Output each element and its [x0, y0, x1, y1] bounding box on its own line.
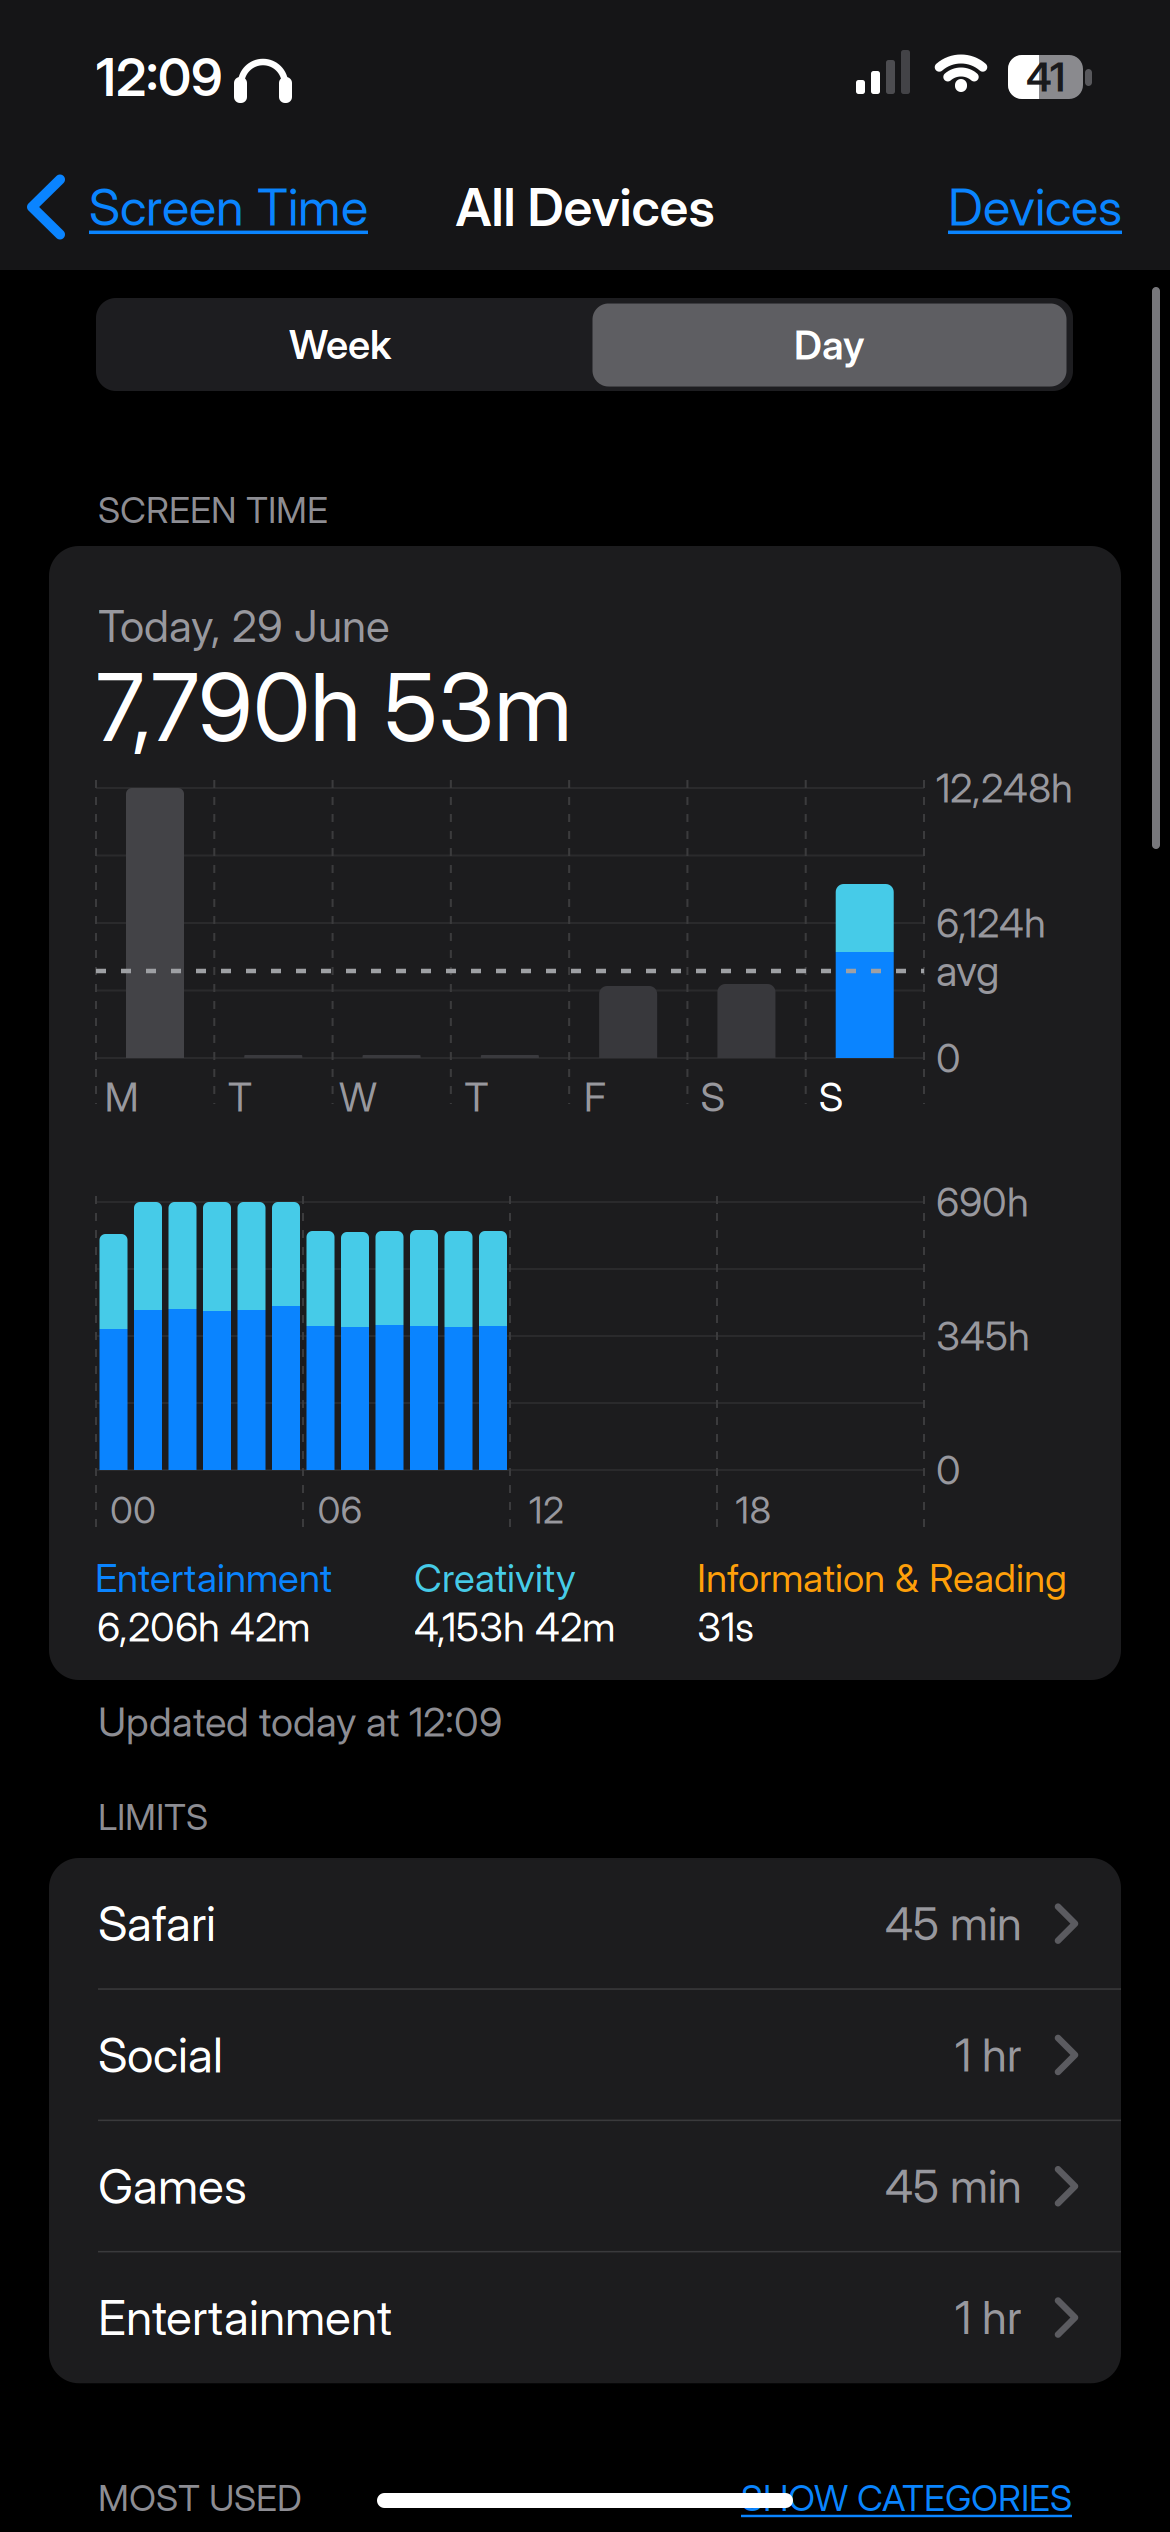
staticText: SCREEN TIME [98, 489, 328, 531]
staticText: 7,790h 53m [96, 652, 572, 762]
staticText: 00 [110, 1488, 156, 1532]
staticText: 690h [936, 1178, 1029, 1226]
staticText: Devices [948, 177, 1122, 237]
staticText: 18 [735, 1488, 771, 1532]
button[interactable]: Screen Time [25, 172, 368, 242]
button[interactable]: Week [96, 298, 584, 391]
staticText: 31s [697, 1603, 754, 1651]
staticText: 1 hr [955, 2028, 1022, 2082]
staticText: 6,206h 42m [97, 1603, 311, 1651]
staticText: 1 hr [955, 2291, 1022, 2344]
staticText: LIMITS [98, 1796, 208, 1838]
staticText: 0 [936, 1446, 961, 1494]
staticText: 45 min [885, 2159, 1022, 2213]
staticText: T [228, 1073, 252, 1121]
button[interactable]: Day [592, 303, 1066, 386]
button[interactable]: Devices [862, 172, 1122, 242]
staticText: 6,124h [936, 899, 1046, 947]
staticText: S [700, 1073, 725, 1121]
staticText: 4,153h 42m [414, 1603, 616, 1651]
staticText: Information & Reading [697, 1555, 1067, 1601]
staticText: Entertainment [95, 1555, 332, 1601]
staticText: avg [936, 947, 999, 995]
staticText: Week [289, 321, 391, 368]
staticText: Updated today at 12:09 [98, 1698, 502, 1746]
staticText: Creativity [414, 1555, 576, 1601]
staticText: Entertainment [98, 2289, 392, 2346]
staticText: W [339, 1073, 377, 1121]
staticText: Games [98, 2158, 247, 2214]
button[interactable]: Social [49, 1989, 1121, 2121]
staticText: Social [98, 2027, 223, 2083]
staticText: 41 [1026, 53, 1065, 101]
staticText: Day [794, 321, 865, 369]
staticText: F [584, 1073, 606, 1121]
staticText: Screen Time [89, 177, 368, 237]
staticText: 45 min [885, 1897, 1022, 1950]
staticText: All Devices [455, 176, 714, 238]
staticText: T [464, 1073, 488, 1121]
button[interactable]: Safari [49, 1858, 1121, 1989]
staticText: 06 [317, 1488, 362, 1532]
staticText: 12 [529, 1488, 564, 1532]
staticText: Safari [98, 1895, 216, 1952]
staticText: 12:09 [96, 46, 223, 108]
button[interactable]: Games [49, 2121, 1121, 2252]
staticText: S [819, 1073, 844, 1121]
staticText: 12,248h [936, 764, 1073, 812]
staticText: Today, 29 June [98, 600, 390, 652]
staticText: 0 [936, 1034, 961, 1082]
staticText: 345h [936, 1312, 1030, 1360]
button[interactable]: SHOW CATEGORIES [552, 2468, 1072, 2528]
button[interactable]: Entertainment [49, 2252, 1121, 2383]
staticText: MOST USED [98, 2477, 302, 2519]
staticText: SHOW CATEGORIES [741, 2477, 1072, 2519]
staticText: M [104, 1073, 138, 1121]
